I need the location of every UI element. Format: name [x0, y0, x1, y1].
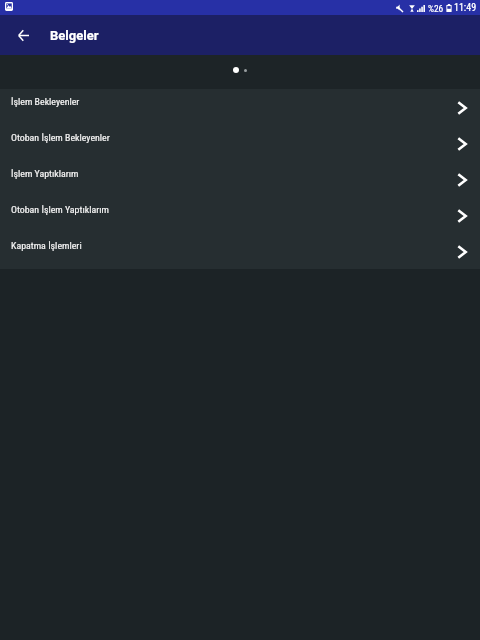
staticText: Kapatma İşlemleri [11, 240, 82, 252]
button[interactable]: Back [11, 23, 35, 47]
staticText: Otoban İşlem Yaptıklarım [11, 204, 109, 216]
button[interactable]: Kapatma İşlemleri [0, 233, 480, 269]
button[interactable]: Otoban İşlem Yaptıklarım [0, 197, 480, 233]
button[interactable]: İşlem Bekleyenler [0, 89, 480, 125]
staticText: %26 [428, 3, 444, 14]
button[interactable]: İşlem Yaptıklarım [0, 161, 480, 197]
staticText: İşlem Yaptıklarım [11, 168, 79, 180]
staticText: İşlem Bekleyenler [11, 96, 80, 108]
staticText: Belgeler [50, 28, 99, 43]
staticText: 11:49 [454, 2, 477, 14]
button[interactable]: Otoban İşlem Bekleyenler [0, 125, 480, 161]
staticText: Otoban İşlem Bekleyenler [11, 132, 110, 144]
